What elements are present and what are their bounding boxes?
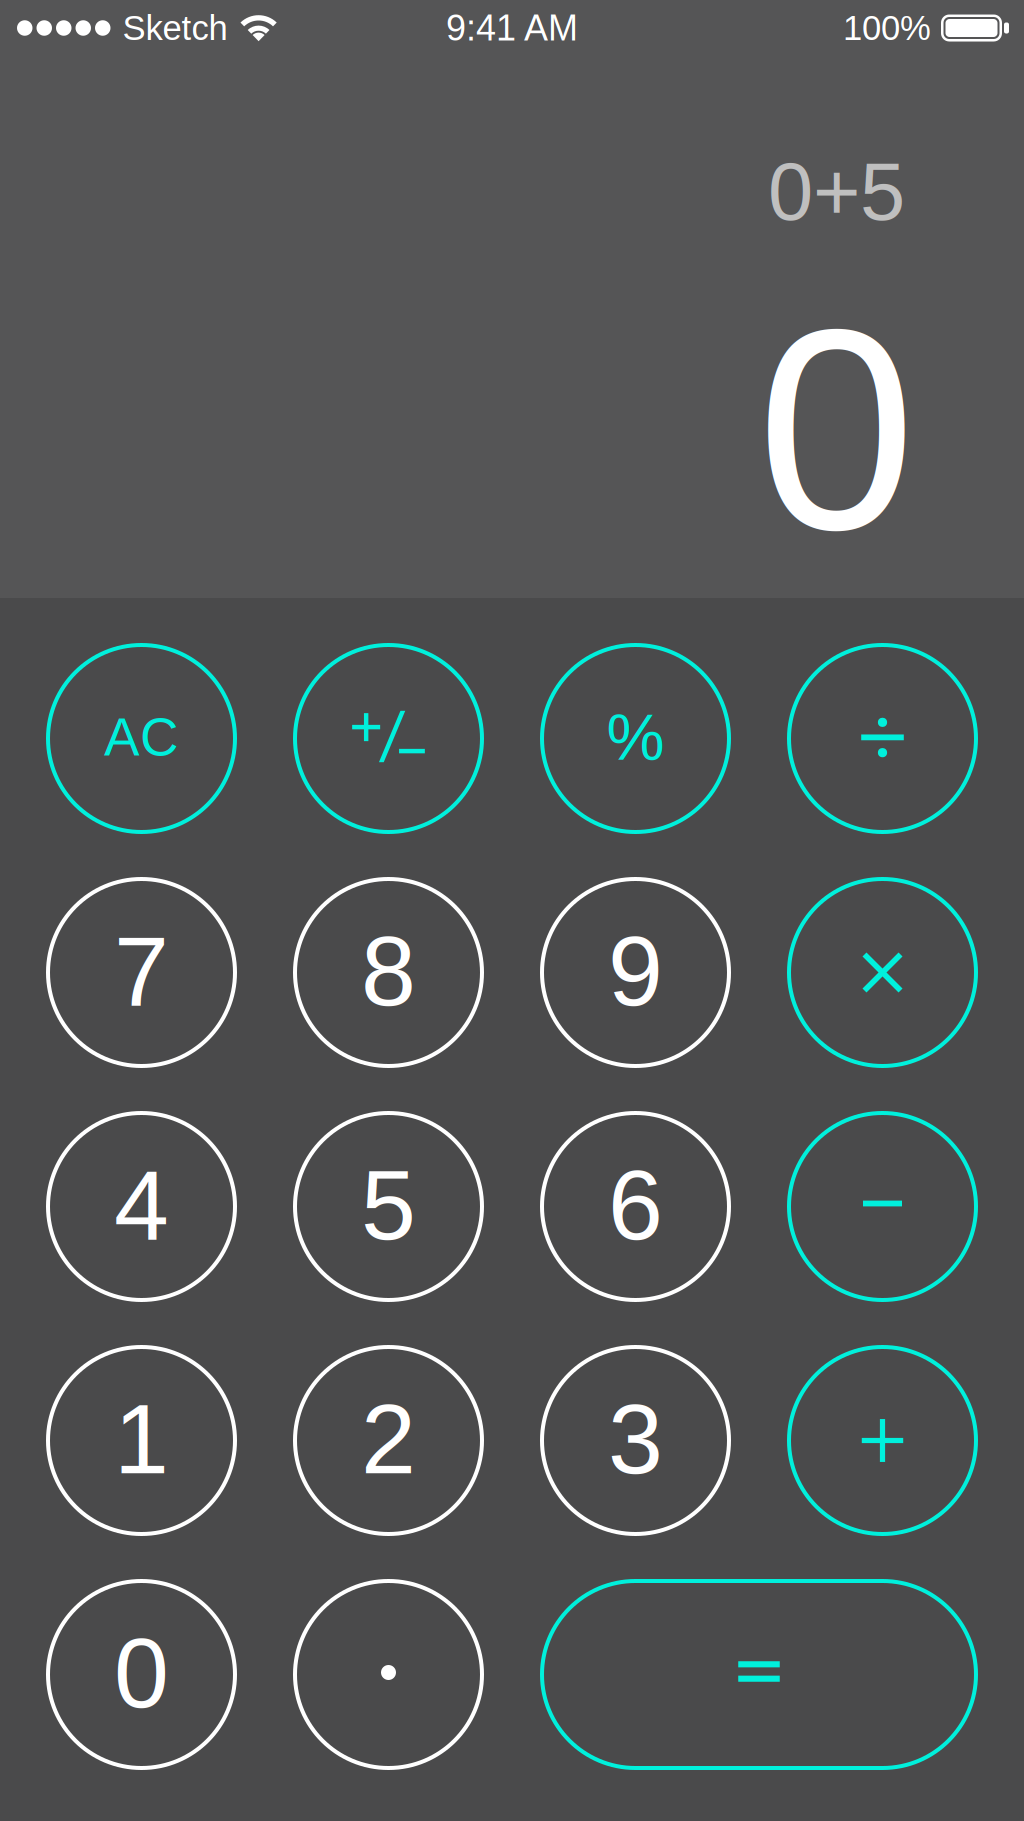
staticText: 3: [608, 1384, 663, 1494]
button[interactable]: 1: [46, 1345, 237, 1536]
staticText: 0: [114, 1618, 169, 1728]
staticText: 0+5: [768, 146, 905, 237]
staticText: 0: [757, 270, 916, 589]
staticText: 7: [114, 916, 169, 1026]
staticText: 9: [608, 916, 663, 1026]
button[interactable]: 0: [46, 1579, 237, 1770]
button[interactable]: Plus minus: [293, 643, 484, 834]
staticText: 4: [114, 1150, 169, 1260]
staticText: 9:41 AM: [446, 8, 578, 48]
button[interactable]: AC: [46, 643, 237, 834]
button[interactable]: 5: [293, 1111, 484, 1302]
button[interactable]: Plus: [787, 1345, 978, 1536]
button[interactable]: Multiply: [787, 877, 978, 1068]
button[interactable]: 7: [46, 877, 237, 1068]
button[interactable]: 6: [540, 1111, 731, 1302]
button[interactable]: 2: [293, 1345, 484, 1536]
staticText: 6: [608, 1150, 663, 1260]
button[interactable]: 4: [46, 1111, 237, 1302]
button[interactable]: Decimal point: [293, 1579, 484, 1770]
staticText: AC: [104, 707, 179, 767]
button[interactable]: 8: [293, 877, 484, 1068]
staticText: 1: [114, 1384, 169, 1494]
button[interactable]: 9: [540, 877, 731, 1068]
staticText: 8: [361, 916, 416, 1026]
button[interactable]: Equals: [540, 1579, 978, 1770]
staticText: 100%: [843, 9, 931, 47]
staticText: 2: [361, 1384, 416, 1494]
button[interactable]: Divide: [787, 643, 978, 834]
staticText: %: [606, 700, 664, 773]
button[interactable]: Minus: [787, 1111, 978, 1302]
button[interactable]: 3: [540, 1345, 731, 1536]
staticText: Sketch: [122, 9, 227, 47]
button[interactable]: %: [540, 643, 731, 834]
staticText: 5: [361, 1150, 416, 1260]
